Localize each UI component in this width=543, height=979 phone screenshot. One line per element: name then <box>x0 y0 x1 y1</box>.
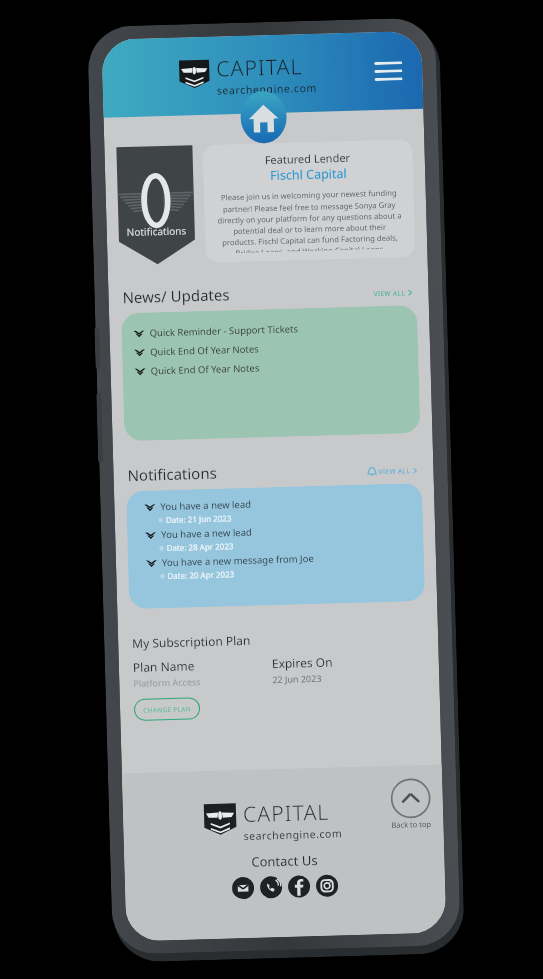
button[interactable]: Email <box>232 877 254 899</box>
staticText: Quick Reminder - Support Tickets <box>149 322 299 339</box>
staticText: You have a new message from Joe <box>162 552 314 569</box>
button[interactable]: You have a new lead <box>144 493 413 529</box>
staticText: Back to top <box>391 819 432 830</box>
staticText: Featured Lender <box>265 150 351 167</box>
staticText: Fischl Capital <box>270 165 347 184</box>
staticText: VIEW ALL <box>378 466 411 476</box>
staticText: CAPITAL <box>216 52 304 83</box>
staticText: Contact Us <box>251 851 319 871</box>
button[interactable]: Quick End Of Year Notes <box>134 335 408 362</box>
button[interactable]: CAPITAL <box>204 797 343 844</box>
staticText: Please join us in welcoming your newest … <box>216 187 403 254</box>
staticText: News/ Updates <box>122 284 230 307</box>
staticText: Platform Access <box>133 675 201 689</box>
button[interactable]: Quick Reminder - Support Tickets <box>133 316 408 343</box>
staticText: searchengine.com <box>217 81 318 97</box>
button[interactable]: Back to top <box>390 779 431 830</box>
button[interactable]: Featured Lender <box>202 139 415 263</box>
button[interactable]: VIEW ALL <box>371 286 415 300</box>
staticText: Date: 28 Apr 2023 <box>166 540 234 553</box>
staticText: Notifications <box>126 223 187 239</box>
button[interactable]: Notifications <box>116 145 196 265</box>
staticText: You have a new lead <box>160 498 251 513</box>
button[interactable]: VIEW ALL <box>365 464 420 478</box>
staticText: 22 Jun 2023 <box>272 672 322 685</box>
staticText: searchengine.com <box>243 826 343 843</box>
staticText: Quick End Of Year Notes <box>150 342 259 358</box>
button[interactable]: You have a new message from Joe <box>146 549 414 585</box>
button[interactable]: CHANGE PLAN <box>134 697 200 721</box>
staticText: CAPITAL <box>243 798 330 829</box>
staticText: My Subscription Plan <box>132 632 251 651</box>
staticText: CHANGE PLAN <box>143 704 191 715</box>
button[interactable]: CAPITAL <box>179 52 318 98</box>
staticText: You have a new lead <box>161 526 252 541</box>
staticText: Quick End Of Year Notes <box>150 361 260 377</box>
button[interactable]: Phone <box>260 876 282 899</box>
button[interactable]: Open menu <box>370 57 407 85</box>
button[interactable]: Instagram <box>316 874 338 897</box>
staticText: Plan Name <box>133 657 195 675</box>
staticText: Date: 20 Apr 2023 <box>167 568 234 581</box>
staticText: VIEW ALL <box>373 288 406 298</box>
button[interactable]: Facebook <box>288 875 310 898</box>
button[interactable]: Home <box>240 91 287 144</box>
button[interactable]: Quick End Of Year Notes <box>134 354 409 381</box>
staticText: Date: 21 Jun 2023 <box>166 512 232 525</box>
button[interactable]: You have a new lead <box>145 521 414 557</box>
staticText: Expires On <box>272 653 333 671</box>
staticText: Notifications <box>127 463 218 485</box>
